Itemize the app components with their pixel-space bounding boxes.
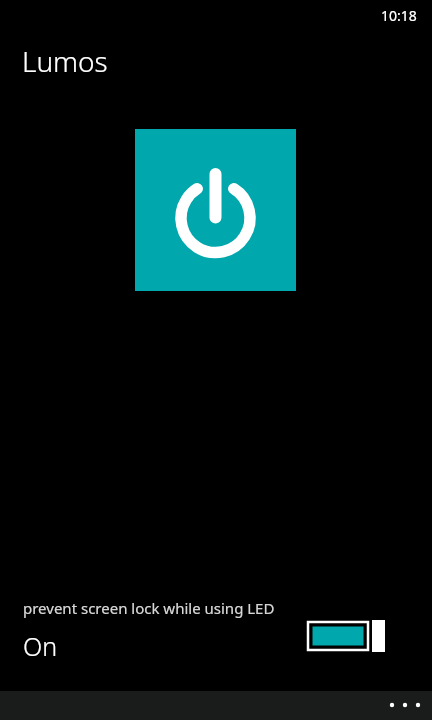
button[interactable]: More options [0, 691, 432, 720]
staticText: prevent screen lock while using LED [23, 598, 275, 618]
staticText: On [23, 629, 58, 663]
button[interactable]: Toggle LED power [135, 129, 296, 291]
staticText: Lumos [22, 42, 108, 80]
button[interactable]: On [0, 618, 432, 658]
staticText: 10:18 [381, 6, 417, 25]
